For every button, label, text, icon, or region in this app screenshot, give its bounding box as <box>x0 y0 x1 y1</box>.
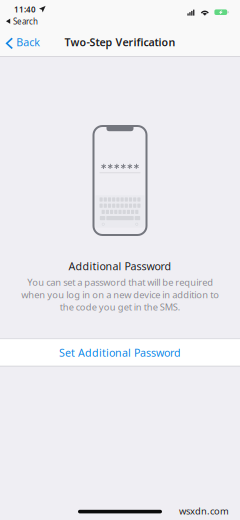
button[interactable]: Set Additional Password <box>0 339 240 366</box>
staticText: Back <box>16 35 40 49</box>
staticText: Two-Step Verification <box>64 35 175 49</box>
staticText: Search <box>13 16 38 27</box>
staticText: Additional Password <box>68 259 171 273</box>
staticText: 11:40 <box>14 4 36 15</box>
button[interactable]: Back <box>0 28 46 56</box>
staticText: Set Additional Password <box>59 345 181 360</box>
staticText: You can set a password that will be requ… <box>21 276 219 313</box>
staticText: wsxdn.com <box>179 505 229 517</box>
